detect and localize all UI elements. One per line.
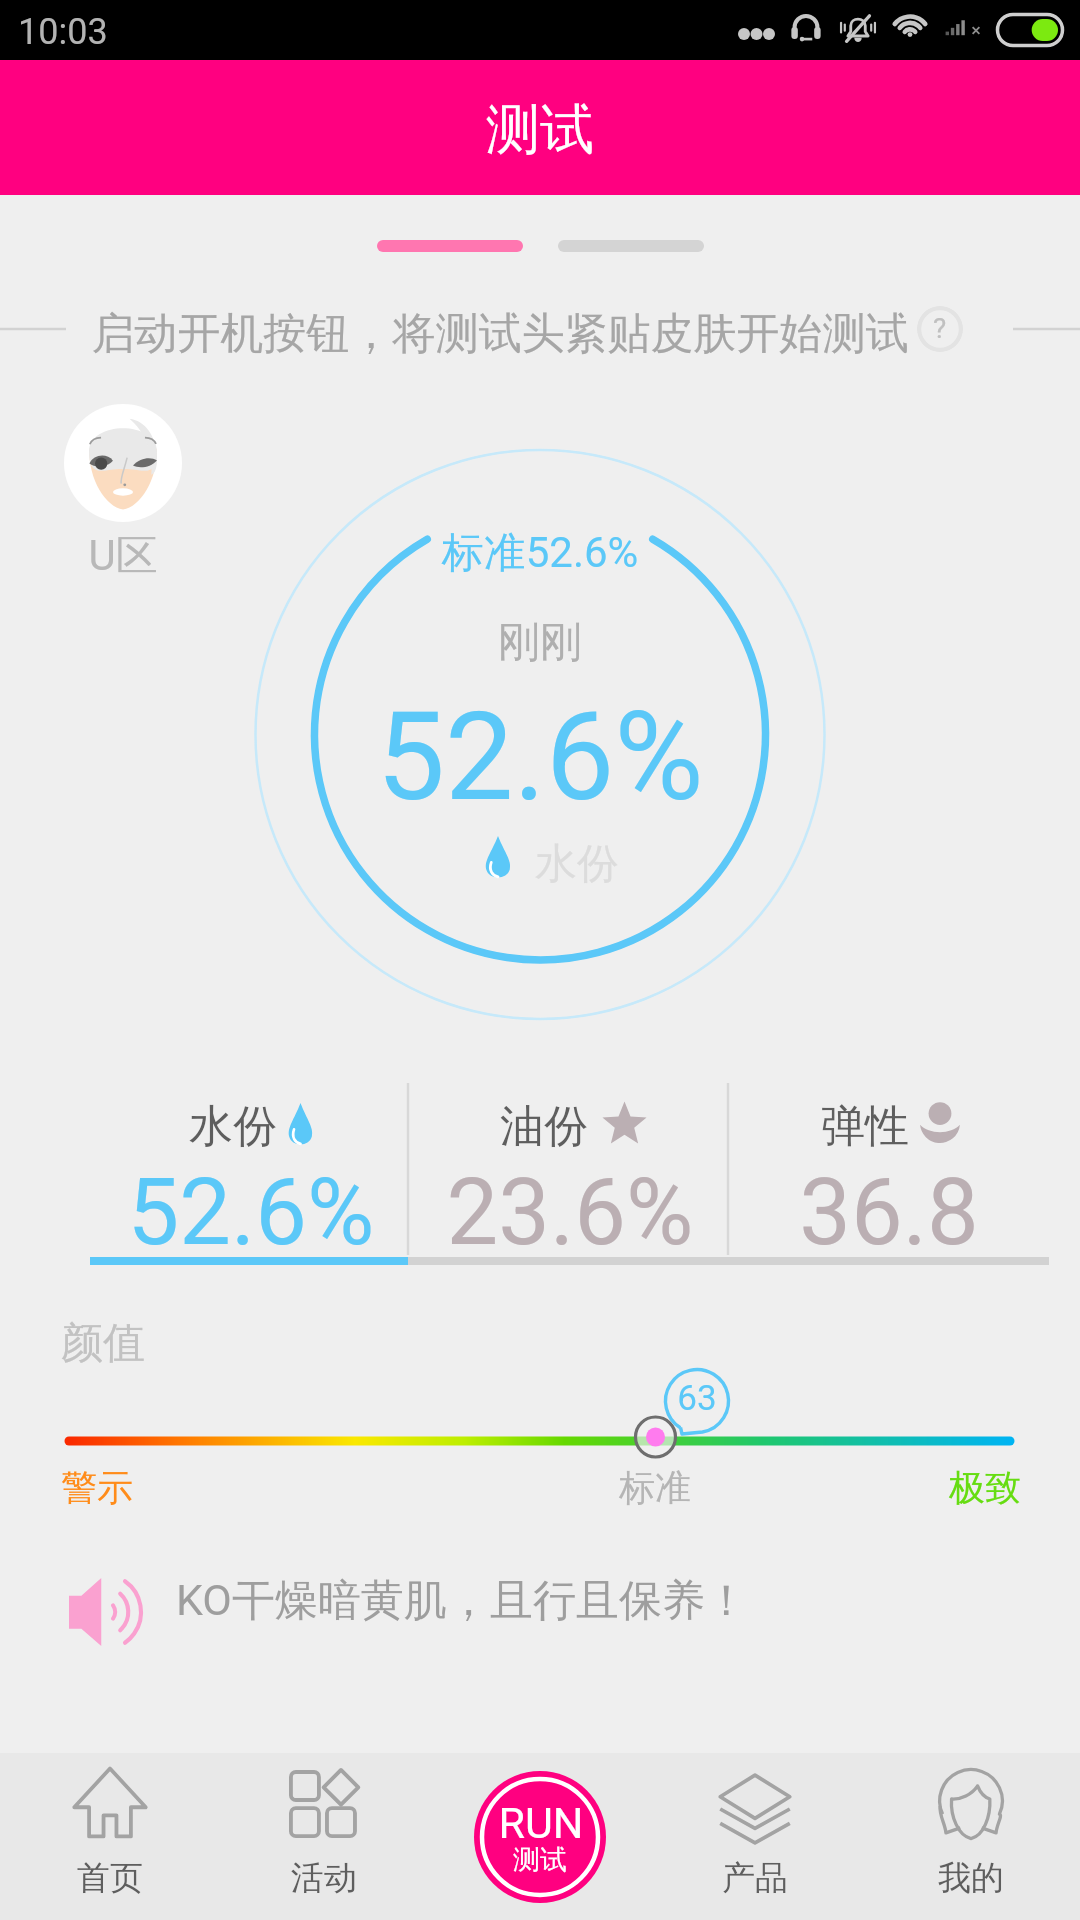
staticText: 警示 [61,1465,133,1510]
button[interactable] [408,1083,728,1255]
staticText: 标准52.6% [90,527,990,580]
staticText: 63 [247,1378,1080,1419]
staticText: 标准 [205,1465,1080,1510]
button[interactable]: Page 1 [377,240,523,252]
staticText: U区 [0,530,573,583]
staticText: 我的 [863,1857,1079,1899]
staticText: 活动 [216,1857,432,1899]
staticText: 水份 [189,1099,277,1154]
staticText: RUN [91,1798,991,1848]
staticText: 刚刚 [90,616,990,669]
button[interactable]: 活动 [216,1753,432,1920]
staticText: 产品 [647,1857,863,1899]
staticText: 颜值 [61,1317,145,1370]
staticText: 弹性 [821,1099,909,1154]
button[interactable] [0,1560,1080,1660]
staticText: 10:03 [18,11,108,53]
staticText: 测试 [90,96,990,164]
staticText: 52.6% [0,1159,701,1267]
staticText: ? [933,312,947,345]
staticText: 52.6% [90,686,990,829]
button[interactable]: Page 2 [558,240,704,252]
button[interactable]: RUN 测试 [474,1771,606,1903]
staticText: 水份 [535,838,619,891]
staticText: 启动开机按钮，将测试头紧贴皮肤开始测试 [50,307,950,361]
staticText: 首页 [2,1857,218,1899]
staticText: KO干燥暗黄肌，且行且保养！ [176,1574,748,1628]
staticText: 油份 [500,1099,588,1154]
button[interactable]: 首页 [2,1753,218,1920]
staticText: 测试 [90,1843,990,1877]
staticText: 极致 [949,1465,1021,1510]
staticText: 23.6% [120,1159,1020,1267]
button[interactable]: 我的 [863,1753,1079,1920]
button[interactable]: Help [917,306,963,352]
button[interactable]: U区 [64,404,182,522]
button[interactable] [728,1083,1080,1255]
button[interactable]: 产品 [647,1753,863,1920]
staticText: 36.8 [439,1159,1080,1267]
button[interactable] [0,1083,408,1255]
